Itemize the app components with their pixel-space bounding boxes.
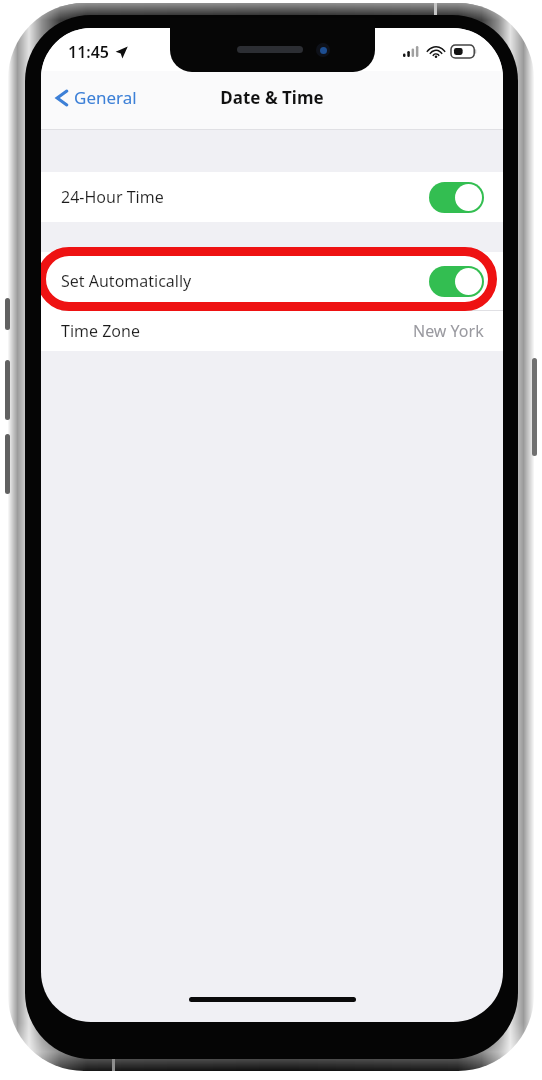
button[interactable]: Toggle, on: [429, 182, 484, 213]
button[interactable]: General: [41, 78, 149, 117]
button[interactable]: Time Zone: [41, 311, 503, 351]
staticText: New York: [413, 320, 484, 342]
staticText: 11:45: [68, 41, 110, 63]
button[interactable]: 24-Hour Time: [41, 172, 503, 222]
staticText: General: [74, 86, 137, 109]
staticText: Time Zone: [61, 320, 140, 342]
button[interactable]: Set Automatically: [41, 252, 503, 310]
staticText: 24-Hour Time: [61, 186, 164, 208]
staticText: Set Automatically: [61, 270, 192, 292]
staticText: Date & Time: [220, 86, 324, 109]
button[interactable]: Toggle, on: [429, 266, 484, 297]
